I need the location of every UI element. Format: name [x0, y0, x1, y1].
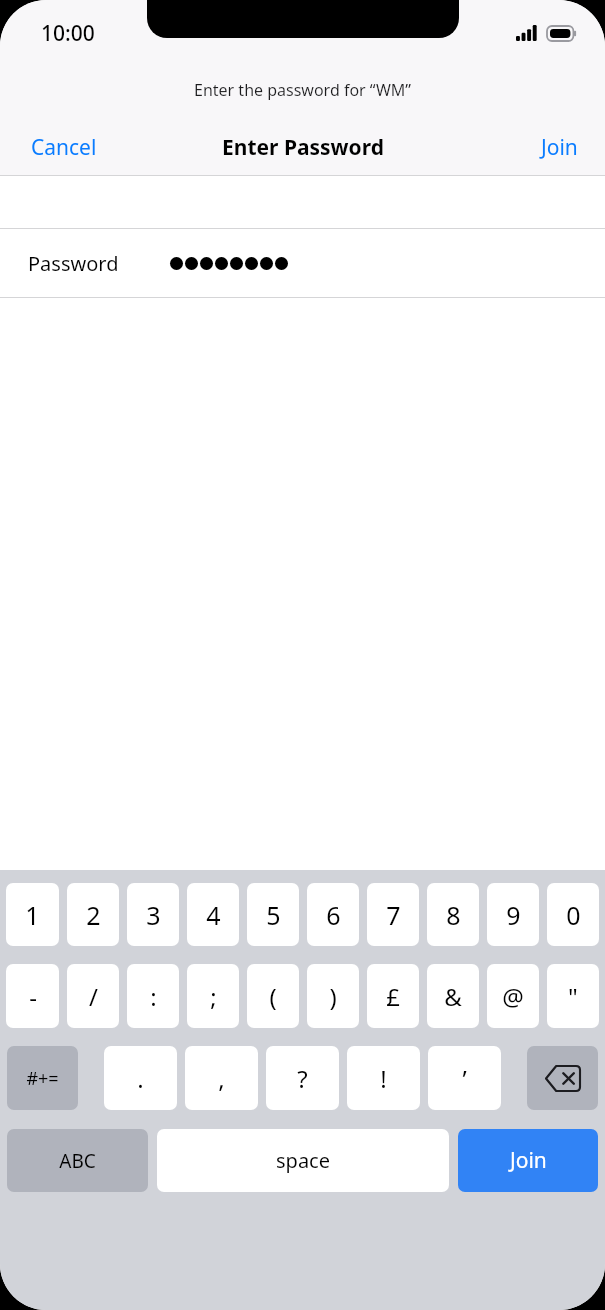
button[interactable]: ABC — [7, 1129, 148, 1192]
button[interactable]: . — [104, 1046, 177, 1110]
button[interactable]: 1 — [6, 883, 59, 946]
button[interactable]: ’ — [428, 1046, 501, 1110]
staticText: ! — [380, 1062, 387, 1095]
button[interactable]: " — [547, 964, 599, 1028]
button[interactable]: & — [427, 964, 479, 1028]
button[interactable]: £ — [367, 964, 419, 1028]
button[interactable]: Join — [514, 125, 605, 170]
button[interactable]: / — [67, 964, 119, 1028]
button[interactable]: ! — [347, 1046, 420, 1110]
staticText: ( — [269, 980, 277, 1013]
button[interactable]: 3 — [127, 883, 179, 946]
staticText: 1 — [25, 898, 40, 932]
button[interactable]: Cancel — [0, 125, 128, 170]
staticText: 5 — [266, 898, 281, 932]
staticText: ) — [329, 980, 337, 1013]
staticText: 2 — [86, 898, 101, 932]
staticText: " — [568, 980, 578, 1013]
button[interactable]: @ — [487, 964, 539, 1028]
staticText: space — [276, 1147, 330, 1174]
staticText: & — [444, 980, 462, 1013]
staticText: Password — [28, 250, 119, 277]
button[interactable]: 9 — [487, 883, 539, 946]
staticText: @ — [502, 980, 524, 1013]
button[interactable]: ; — [187, 964, 239, 1028]
button[interactable]: 5 — [247, 883, 299, 946]
staticText: #+= — [26, 1066, 59, 1091]
staticText: / — [89, 980, 98, 1013]
staticText: . — [137, 1062, 144, 1095]
button[interactable]: Join — [458, 1129, 598, 1192]
button[interactable]: 7 — [367, 883, 419, 946]
staticText: ; — [210, 980, 217, 1013]
staticText: ’ — [462, 1062, 467, 1095]
button[interactable]: 4 — [187, 883, 239, 946]
staticText: 3 — [146, 898, 161, 932]
button[interactable]: , — [185, 1046, 258, 1110]
button[interactable]: ? — [266, 1046, 339, 1110]
staticText: 4 — [206, 898, 221, 932]
button[interactable]: ) — [307, 964, 359, 1028]
staticText: ABC — [59, 1148, 96, 1174]
staticText: 10:00 — [41, 19, 95, 48]
button[interactable]: Backspace — [527, 1046, 598, 1110]
staticText: , — [218, 1062, 225, 1095]
button[interactable]: space — [157, 1129, 449, 1192]
staticText: 9 — [506, 898, 521, 932]
button[interactable]: 2 — [67, 883, 119, 946]
button[interactable]: : — [127, 964, 179, 1028]
staticText: Cancel — [31, 133, 97, 162]
staticText: 6 — [326, 898, 341, 932]
staticText: Enter Password — [222, 133, 384, 162]
button[interactable]: 8 — [427, 883, 479, 946]
staticText: 8 — [446, 898, 461, 932]
staticText: 0 — [566, 898, 581, 932]
button[interactable]: ( — [247, 964, 299, 1028]
button[interactable]: Password — [0, 229, 605, 297]
button[interactable]: 0 — [547, 883, 599, 946]
staticText: 7 — [386, 898, 401, 932]
staticText: Join — [510, 1146, 547, 1175]
button[interactable]: - — [6, 964, 59, 1028]
button[interactable]: #+= — [7, 1046, 78, 1110]
staticText: ? — [297, 1062, 308, 1095]
staticText: Join — [541, 133, 578, 162]
staticText: Enter the password for “WM” — [194, 79, 412, 101]
staticText: - — [29, 980, 37, 1013]
staticText: : — [150, 980, 157, 1013]
button[interactable]: 6 — [307, 883, 359, 946]
staticText: £ — [386, 980, 400, 1013]
